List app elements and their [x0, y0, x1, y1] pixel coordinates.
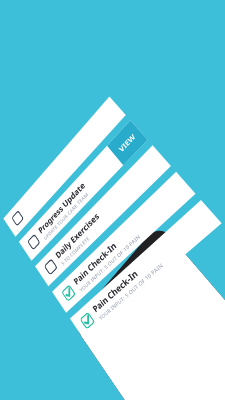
staticText: Progress Update: [36, 180, 87, 236]
staticText: UPDATE YOUR CARE TEAM: [43, 191, 89, 241]
staticText: Pain Check-In: [90, 267, 140, 315]
button[interactable]: Mark complete: [19, 120, 148, 261]
button[interactable]: Mark complete: [27, 233, 41, 251]
button[interactable]: Completed: [79, 311, 95, 330]
staticText: Daily Exercises: [53, 210, 101, 261]
button[interactable]: Mark complete: [35, 145, 171, 286]
staticText: Pain Check-In: [71, 239, 119, 287]
button[interactable]: Completed: [52, 172, 195, 313]
button[interactable]: Mark complete: [43, 258, 58, 276]
button[interactable]: Completed: [70, 200, 222, 341]
button[interactable]: Completed: [61, 284, 76, 302]
button[interactable]: Mark complete: [3, 96, 126, 237]
button[interactable]: Mark complete: [11, 210, 24, 227]
staticText: VIEW: [117, 132, 137, 154]
button[interactable]: VIEW: [107, 120, 148, 165]
staticText: 5 TO COMPLETE: [60, 235, 91, 267]
staticText: YOUR INPUT: 5 OUT OF 10 PAIN: [98, 261, 164, 321]
staticText: YOUR INPUT: 5 OUT OF 10 PAIN: [78, 233, 142, 293]
